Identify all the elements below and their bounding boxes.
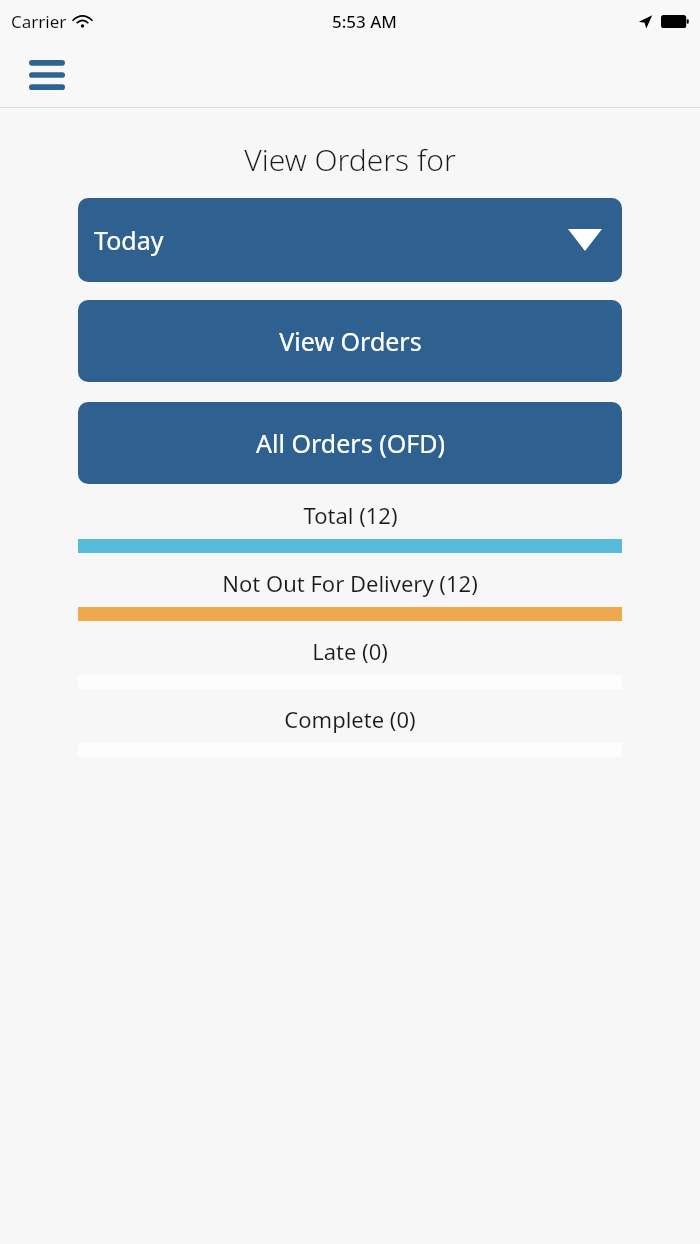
staticText: Not Out For Delivery (12) (222, 568, 478, 598)
staticText: Total (12) (303, 500, 398, 530)
button[interactable]: Menu (24, 52, 70, 98)
button[interactable]: All Orders (OFD) (78, 402, 622, 484)
staticText: Carrier (11, 10, 67, 33)
staticText: Late (0) (312, 636, 388, 666)
staticText: View Orders (279, 324, 422, 358)
staticText: All Orders (OFD) (256, 426, 445, 460)
button[interactable]: Today (78, 198, 622, 282)
button[interactable]: View Orders (78, 300, 622, 382)
staticText: View Orders for (244, 139, 456, 180)
staticText: Today (94, 223, 164, 257)
staticText: Complete (0) (284, 704, 416, 734)
staticText: 5:53 AM (332, 10, 397, 33)
